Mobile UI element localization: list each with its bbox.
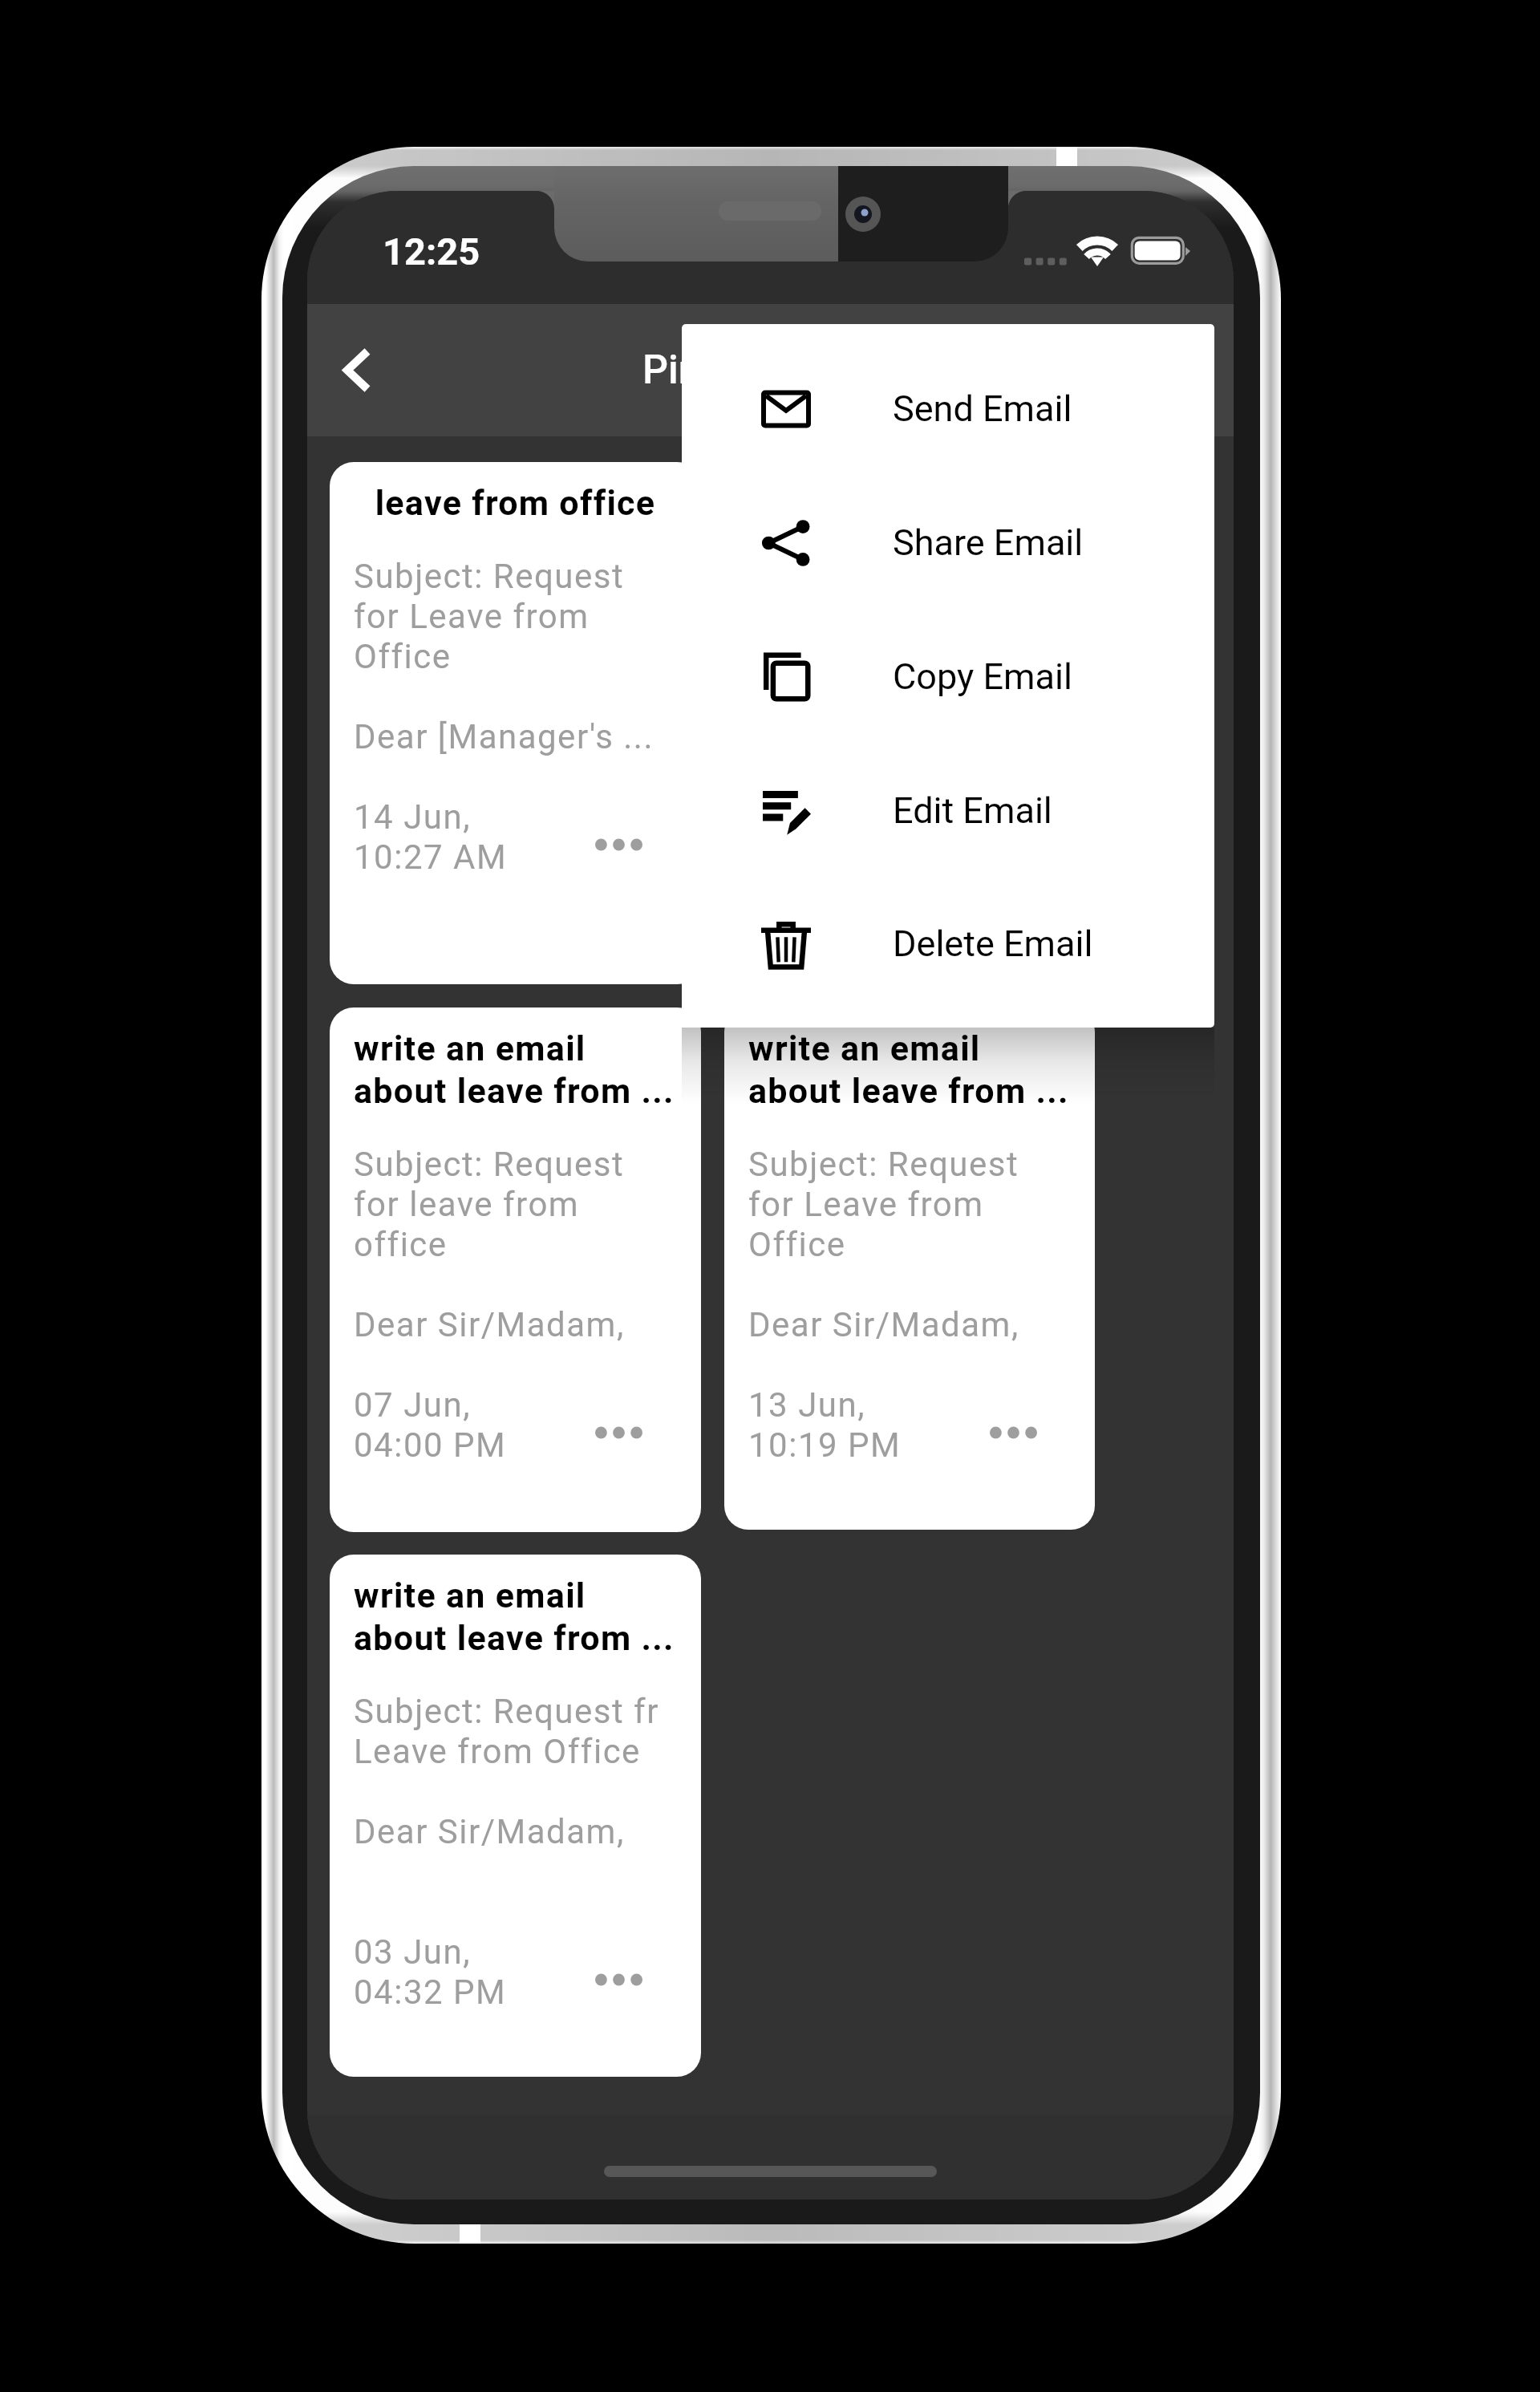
staticText: 12:25 (383, 229, 480, 274)
staticText: Pinned Emails (642, 347, 898, 394)
button[interactable]: Share Email (682, 476, 1214, 610)
staticText: Subject: Request fr Leave from Office De… (354, 1692, 659, 1851)
staticText: 03 Jun, 04:32 PM (354, 1932, 507, 2012)
button[interactable]: More options (574, 1940, 663, 2020)
staticText: Subject: Request for Leave from Office D… (748, 1145, 1019, 1344)
button[interactable]: More options (574, 1393, 663, 1473)
button[interactable]: Send Email (682, 342, 1214, 476)
staticText: Subject: Request for leave from office D… (354, 1145, 625, 1344)
button[interactable]: Back (312, 304, 402, 436)
button[interactable]: write an email about leave from ... (724, 1007, 1095, 1530)
button[interactable]: Edit Email (682, 744, 1214, 878)
staticText: 13 Jun, 10:19 PM (748, 1385, 902, 1465)
button[interactable]: write an email about leave from ... (330, 1555, 701, 2077)
button[interactable]: Delete Email (682, 878, 1214, 1010)
staticText: Subject: Request for Leave from Office D… (354, 557, 654, 756)
staticText: 07 Jun, 04:00 PM (354, 1385, 507, 1465)
staticText: Copy Email (893, 655, 1072, 698)
staticText: write an email about leave from ... (354, 1028, 677, 1111)
button[interactable]: More options (574, 805, 663, 885)
staticText: Share Email (893, 521, 1084, 564)
button[interactable]: write an email about leave from ... (330, 1007, 701, 1532)
staticText: write an email about leave from ... (354, 1575, 677, 1658)
staticText: Edit Email (893, 789, 1052, 832)
button[interactable]: More options (969, 1393, 1057, 1473)
staticText: Send Email (893, 387, 1072, 430)
button[interactable]: leave from office (330, 462, 701, 984)
staticText: leave from office (354, 483, 677, 523)
staticText: Delete Email (893, 922, 1093, 965)
staticText: write an email about leave from ... (748, 1028, 1071, 1111)
staticText: 14 Jun, 10:27 AM (354, 797, 508, 877)
button[interactable]: Copy Email (682, 610, 1214, 744)
